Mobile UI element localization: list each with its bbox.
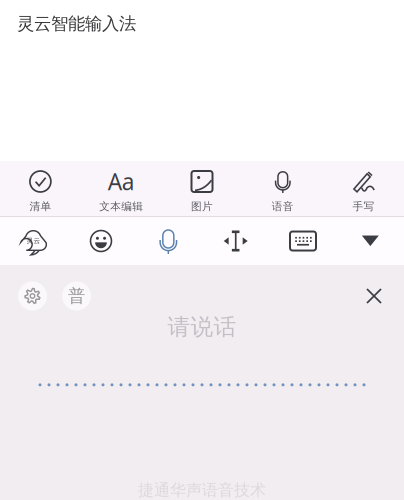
staticText: 捷通华声语音技术 [138,480,266,500]
button[interactable]: 移动光标 [202,217,269,265]
button[interactable]: Aa [81,161,162,217]
staticText: 图片 [191,200,213,213]
staticText: Aa [108,166,135,196]
button[interactable]: 图片 [162,161,242,217]
staticText: 灵云智能输入法 [17,13,136,34]
button[interactable]: 键盘 [269,217,337,265]
button[interactable]: 表情 [67,217,135,265]
staticText: 语音 [272,200,294,213]
button[interactable]: 清单 [0,161,81,217]
button[interactable]: 语音输入 [135,217,202,265]
button[interactable]: 关闭 [359,281,389,311]
staticText: 请说话 [167,313,236,341]
button[interactable]: 语音 [242,161,323,217]
staticText: 清单 [29,200,51,213]
staticText: 普 [68,285,85,307]
staticText: 灵云 [26,237,40,245]
staticText: 文本编辑 [99,200,143,213]
staticText: 手写 [353,200,375,213]
button[interactable]: 手写 [323,161,404,217]
button[interactable]: 收起键盘 [337,217,404,265]
button[interactable]: 灵云 [0,217,67,265]
button[interactable]: 设置 [18,281,47,310]
button[interactable]: 普 [62,281,91,310]
